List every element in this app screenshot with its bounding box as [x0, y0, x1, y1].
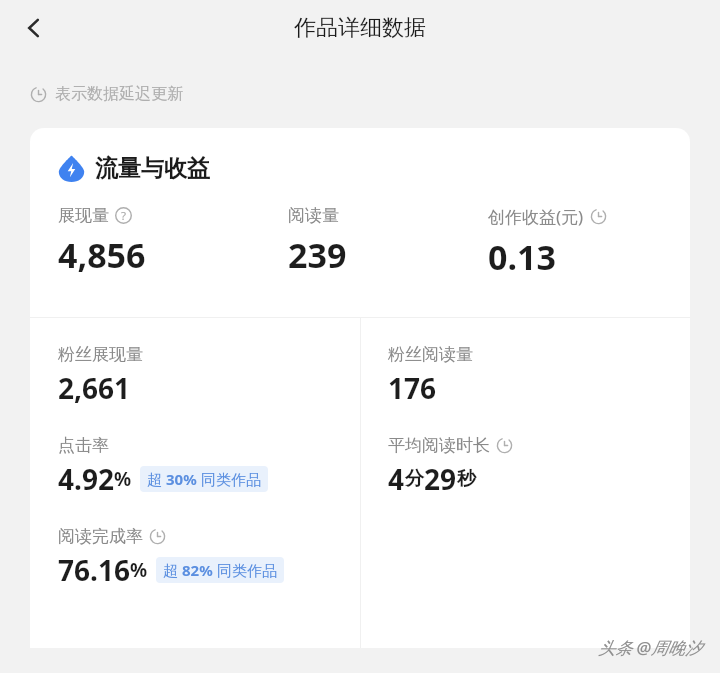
staticText: 头条 @周晚汐	[598, 636, 702, 659]
button[interactable]: 粉丝阅读量	[388, 344, 473, 407]
staticText: 同类作品	[197, 469, 261, 489]
staticText: 超	[147, 469, 166, 489]
staticText: 176	[388, 369, 437, 407]
staticText: %	[114, 466, 132, 492]
staticText: 阅读完成率	[58, 526, 143, 547]
button[interactable]: 超	[140, 466, 268, 492]
button[interactable]: 创作收益(元)	[488, 205, 607, 280]
staticText: 粉丝阅读量	[388, 344, 473, 365]
button[interactable]: 展现量	[58, 205, 146, 278]
staticText: 76.16	[58, 551, 130, 589]
staticText: 作品详细数据	[294, 14, 426, 42]
staticText: 0.13	[488, 234, 556, 280]
staticText: 4.92	[58, 460, 114, 498]
staticText: 阅读量	[288, 205, 339, 226]
staticText: 表示数据延迟更新	[55, 84, 183, 104]
staticText: 82%	[182, 560, 213, 580]
staticText: 超	[163, 560, 182, 580]
button[interactable]: 粉丝展现量	[58, 344, 143, 407]
staticText: ?	[121, 208, 127, 224]
button[interactable]: Back	[6, 0, 62, 56]
button[interactable]: 平均阅读时长	[388, 435, 513, 498]
staticText: 4,856	[58, 232, 146, 278]
staticText: 粉丝展现量	[58, 344, 143, 365]
staticText: 平均阅读时长	[388, 435, 490, 456]
staticText: 4	[388, 460, 405, 498]
staticText: 2,661	[58, 369, 131, 407]
staticText: 点击率	[58, 435, 109, 456]
staticText: 秒	[457, 467, 476, 491]
staticText: 创作收益(元)	[488, 205, 584, 228]
button[interactable]: 点击率	[58, 435, 268, 498]
staticText: 分	[405, 467, 424, 491]
button[interactable]: 阅读完成率	[58, 526, 284, 589]
button[interactable]: 超	[156, 557, 284, 583]
staticText: 流量与收益	[95, 154, 210, 183]
staticText: 同类作品	[213, 560, 277, 580]
staticText: %	[130, 557, 148, 583]
staticText: 29	[424, 460, 457, 498]
staticText: 展现量	[58, 205, 109, 226]
staticText: 30%	[166, 469, 197, 489]
button[interactable]: 阅读量	[288, 205, 347, 278]
staticText: 239	[288, 232, 347, 278]
